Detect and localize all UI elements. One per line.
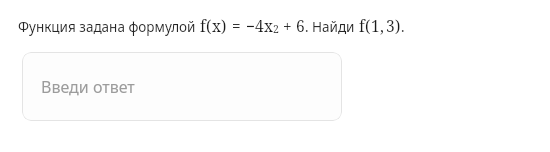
button[interactable]: Введи ответ: [22, 52, 342, 121]
staticText: Введи ответ: [41, 76, 135, 98]
staticText: f: [200, 15, 206, 36]
staticText: 1: [371, 15, 380, 36]
staticText: (: [365, 15, 371, 36]
staticText: x: [264, 15, 273, 36]
staticText: Найди: [312, 18, 355, 36]
staticText: 3: [386, 15, 395, 36]
staticText: ): [395, 15, 401, 36]
staticText: 6: [296, 15, 305, 36]
staticText: .: [305, 17, 309, 36]
staticText: .: [401, 17, 405, 36]
staticText: ,: [380, 15, 384, 36]
staticText: Функция задана формулой: [18, 18, 199, 36]
staticText: x: [212, 15, 221, 36]
staticText: 2: [273, 22, 279, 36]
staticText: =: [232, 15, 241, 36]
staticText: ): [221, 15, 227, 36]
staticText: f: [359, 15, 365, 36]
staticText: +: [283, 15, 292, 36]
staticText: 4: [255, 15, 264, 36]
staticText: −: [246, 15, 255, 36]
staticText: (: [206, 15, 212, 36]
